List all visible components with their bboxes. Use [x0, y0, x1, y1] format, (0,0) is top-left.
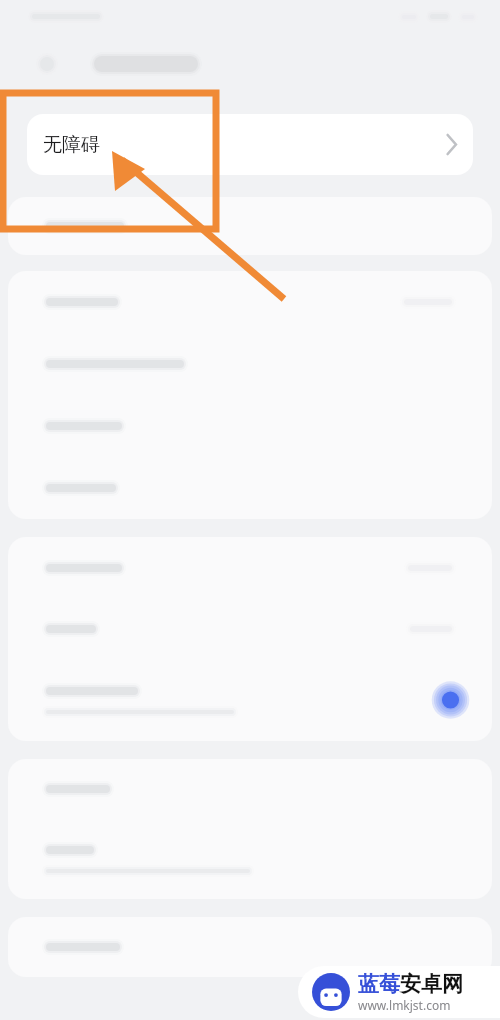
button[interactable]: 无障碍	[27, 114, 473, 175]
button[interactable]	[8, 659, 492, 741]
button[interactable]	[8, 759, 492, 819]
button[interactable]	[8, 457, 492, 519]
button[interactable]: Back	[36, 53, 58, 75]
staticText: 安卓网	[400, 971, 463, 997]
button[interactable]	[8, 197, 492, 255]
staticText: 蓝莓	[358, 971, 400, 997]
button[interactable]	[8, 819, 492, 899]
staticText: www.lmkjst.com	[358, 997, 451, 1013]
button[interactable]	[8, 395, 492, 457]
button[interactable]	[8, 537, 492, 599]
button[interactable]	[8, 917, 492, 977]
button[interactable]	[8, 271, 492, 333]
button[interactable]	[8, 599, 492, 659]
staticText: 无障碍	[43, 133, 100, 157]
button[interactable]	[8, 333, 492, 395]
